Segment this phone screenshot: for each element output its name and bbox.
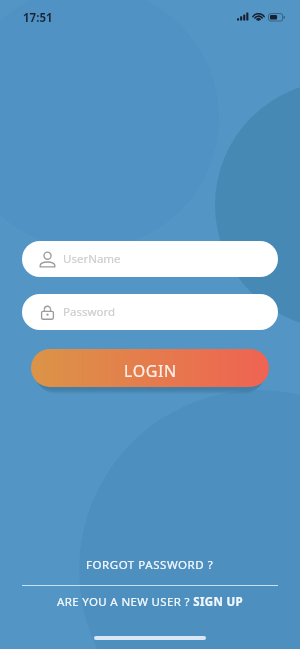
staticText: UserName [63,251,121,267]
staticText: LOGIN [124,360,177,382]
staticText: 17:51 [23,10,53,26]
other: User name [40,251,55,267]
staticText: ARE YOU A NEW USER ? SIGN UP [57,594,244,610]
button[interactable]: Password [22,294,278,330]
button[interactable]: ARE YOU A NEW USER ? SIGN UP [0,588,300,616]
staticText: FORGOT PASSWORD ? [86,557,214,573]
button[interactable]: FORGOT PASSWORD ? [0,551,300,579]
staticText: Password [63,304,116,320]
button[interactable]: User name [22,241,278,277]
other: Password [40,304,55,320]
button[interactable]: LOGIN [31,349,269,387]
